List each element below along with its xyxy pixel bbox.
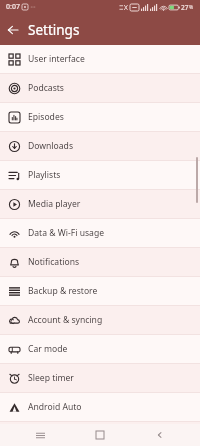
button[interactable]: Back <box>0 17 26 43</box>
button[interactable]: Podcasts <box>0 74 200 102</box>
button[interactable]: Sleep timer <box>0 364 200 392</box>
button[interactable]: Backup & restore <box>0 277 200 305</box>
staticText: % <box>189 4 194 11</box>
button[interactable]: Recent apps <box>20 424 60 446</box>
staticText: Podcasts <box>28 82 64 94</box>
staticText: Settings <box>28 21 80 39</box>
staticText: 27 <box>181 3 189 12</box>
staticText: Sleep timer <box>28 372 74 384</box>
button[interactable]: User interface <box>0 45 200 73</box>
staticText: Notifications <box>28 256 80 268</box>
staticText: Media player <box>28 198 81 210</box>
button[interactable]: Downloads <box>0 132 200 160</box>
button[interactable]: Media player <box>0 190 200 218</box>
staticText: 0:07 <box>6 2 20 12</box>
staticText: Playlists <box>28 169 61 181</box>
staticText: Episodes <box>28 111 64 123</box>
staticText: Data & Wi-Fi usage <box>28 227 105 239</box>
button[interactable]: Android Auto <box>0 393 200 421</box>
staticText: Android Auto <box>28 401 82 413</box>
button[interactable]: Back <box>140 424 180 446</box>
button[interactable]: Playlists <box>0 161 200 189</box>
button[interactable]: Data & Wi-Fi usage <box>0 219 200 247</box>
button[interactable]: Episodes <box>0 103 200 131</box>
button[interactable]: Home <box>80 424 120 446</box>
staticText: Car mode <box>28 343 68 355</box>
staticText: User interface <box>28 53 85 65</box>
staticText: Backup & restore <box>28 285 98 297</box>
button[interactable]: Account & syncing <box>0 306 200 334</box>
button[interactable]: Car mode <box>0 335 200 363</box>
button[interactable]: Notifications <box>0 248 200 276</box>
staticText: Downloads <box>28 140 74 152</box>
staticText: Account & syncing <box>28 314 103 326</box>
